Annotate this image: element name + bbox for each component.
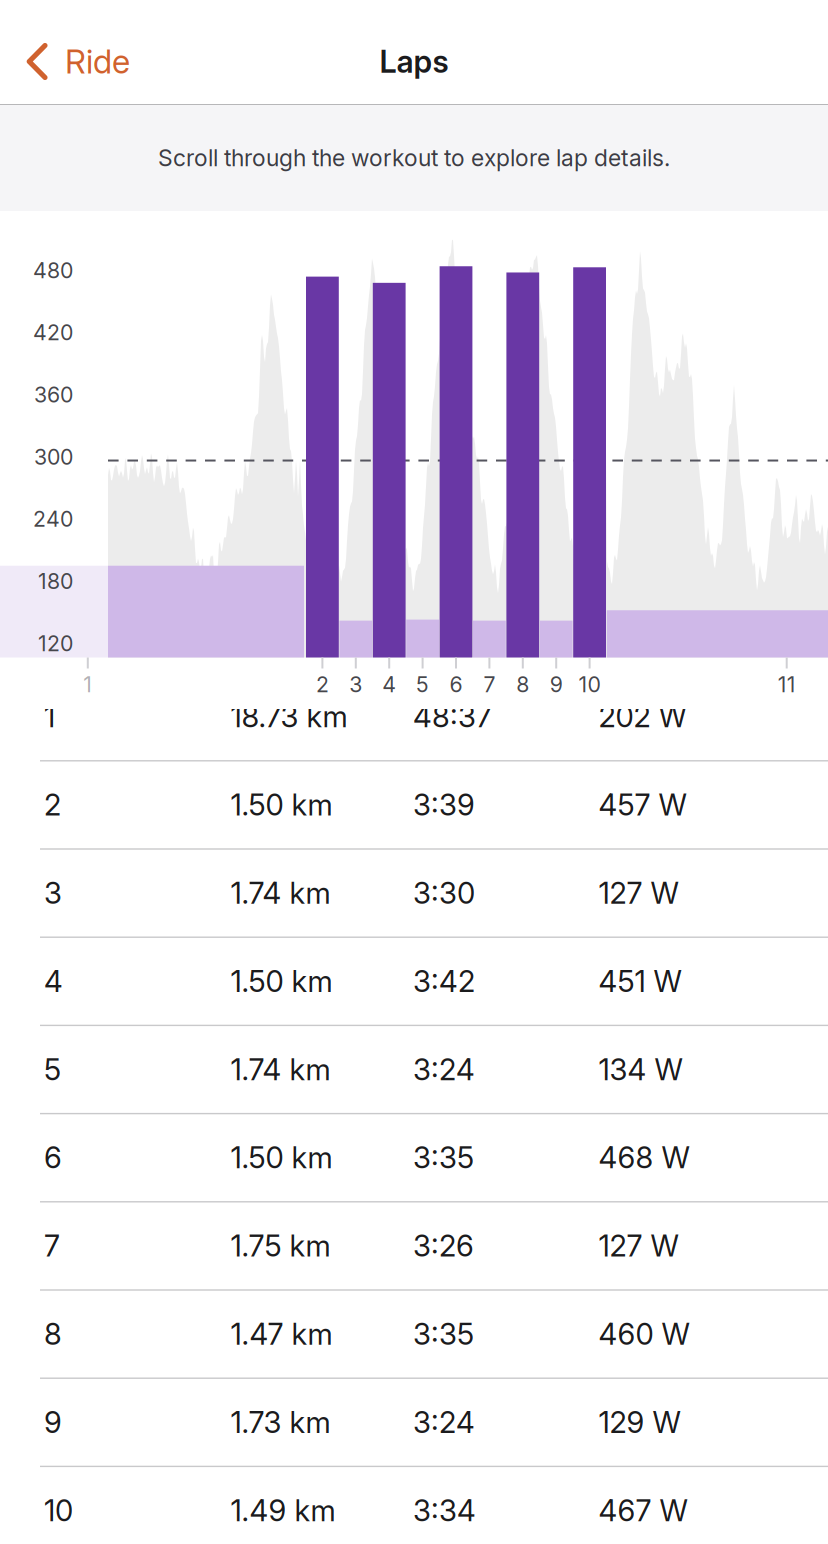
staticText: 10	[44, 1493, 73, 1528]
staticText: 1.47 km	[230, 1316, 332, 1352]
staticText: 3:26	[413, 1228, 474, 1264]
staticText: 1.50 km	[230, 964, 332, 999]
staticText: 127 W	[598, 875, 678, 911]
staticText: Ride	[65, 42, 130, 81]
staticText: 240	[33, 506, 73, 532]
button[interactable]: 1	[0, 672, 828, 760]
staticText: 3:35	[413, 1140, 474, 1175]
button[interactable]: Ride	[0, 0, 230, 104]
staticText: 1.50 km	[230, 1140, 332, 1175]
staticText: 6	[449, 672, 462, 697]
staticText: 468 W	[598, 1140, 689, 1175]
button[interactable]: 2	[0, 760, 828, 848]
staticText: 300	[34, 444, 73, 470]
staticText: 1.74 km	[230, 875, 330, 911]
button[interactable]: 6	[0, 1113, 828, 1201]
button[interactable]: 5	[0, 1025, 828, 1113]
staticText: 7	[483, 672, 495, 697]
staticText: 180	[38, 568, 73, 594]
staticText: 360	[34, 382, 73, 408]
staticText: 10	[579, 672, 601, 697]
staticText: 460 W	[598, 1316, 689, 1352]
staticText: 3:42	[413, 964, 475, 999]
staticText: 3:30	[413, 875, 475, 911]
staticText: 7	[44, 1228, 60, 1264]
staticText: 202 W	[598, 699, 686, 734]
staticText: 3	[349, 672, 362, 697]
staticText: 120	[38, 630, 73, 656]
staticText: 4	[382, 672, 396, 697]
staticText: 9	[44, 1405, 62, 1440]
button[interactable]: 4	[0, 936, 828, 1025]
staticText: 4	[44, 964, 63, 999]
staticText: 11	[778, 672, 796, 697]
staticText: 2	[44, 787, 61, 823]
staticText: 467 W	[598, 1493, 687, 1528]
button[interactable]: 9	[0, 1377, 828, 1466]
staticText: 457 W	[598, 787, 686, 823]
button[interactable]: 3	[0, 848, 828, 936]
staticText: 1.74 km	[230, 1052, 330, 1087]
button[interactable]: 8	[0, 1289, 828, 1377]
staticText: 3:34	[413, 1493, 476, 1528]
staticText: 8	[516, 672, 529, 697]
staticText: 48:37	[413, 699, 492, 734]
staticText: 3:39	[413, 787, 475, 823]
staticText: 5	[416, 672, 429, 697]
staticText: 3:24	[413, 1405, 475, 1440]
staticText: 6	[44, 1140, 62, 1175]
staticText: 1	[83, 672, 92, 697]
staticText: 1	[44, 699, 55, 734]
staticText: 1.75 km	[230, 1228, 330, 1264]
button[interactable]: 7	[0, 1201, 828, 1289]
staticText: 451 W	[598, 964, 681, 999]
staticText: Scroll through the workout to explore la…	[158, 144, 670, 172]
staticText: 134 W	[598, 1052, 682, 1087]
staticText: 3	[44, 875, 62, 911]
staticText: 5	[44, 1052, 61, 1087]
staticText: 9	[550, 672, 563, 697]
staticText: 1.50 km	[230, 787, 332, 823]
staticText: 480	[33, 257, 73, 283]
staticText: 1.49 km	[230, 1493, 335, 1528]
staticText: 129 W	[598, 1405, 680, 1440]
staticText: 3:35	[413, 1316, 474, 1352]
staticText: 18.73 km	[230, 699, 347, 734]
button[interactable]: 10	[0, 1466, 828, 1544]
staticText: 127 W	[598, 1228, 678, 1264]
staticText: 3:24	[413, 1052, 475, 1087]
staticText: 2	[316, 672, 329, 697]
staticText: Laps	[379, 43, 448, 80]
staticText: 420	[33, 320, 73, 345]
staticText: 1.73 km	[230, 1405, 330, 1440]
staticText: 8	[44, 1316, 62, 1352]
